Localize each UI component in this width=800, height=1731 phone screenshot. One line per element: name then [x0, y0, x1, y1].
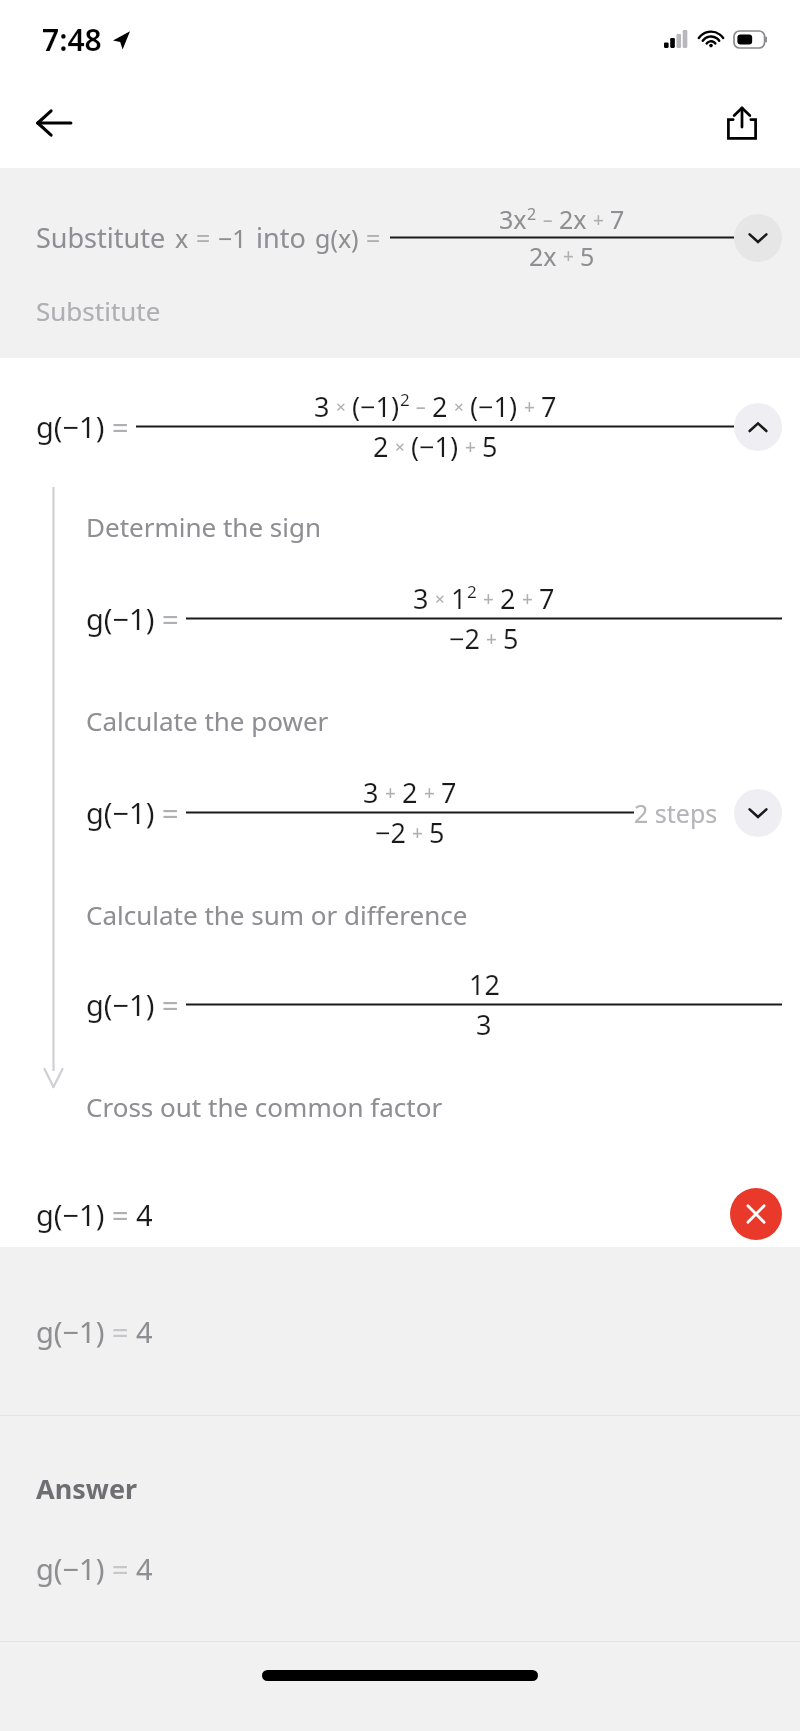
staticText: −2 — [375, 814, 406, 851]
staticText: 2x — [529, 239, 557, 273]
staticText: = — [162, 599, 179, 638]
staticText: 5 — [429, 814, 445, 851]
staticText: × — [336, 395, 346, 418]
staticText: = — [366, 221, 381, 255]
staticText: x — [175, 221, 189, 255]
staticText: 5 — [503, 620, 519, 657]
staticText: 5 — [580, 239, 595, 273]
staticText: Answer — [36, 1470, 138, 1507]
staticText: + — [522, 586, 533, 612]
button[interactable]: g(−1) — [0, 1247, 800, 1415]
staticText: + — [424, 780, 435, 806]
staticText: = — [162, 793, 179, 832]
staticText: 4 — [136, 1312, 153, 1351]
staticText: Cross out the common factor — [86, 1089, 443, 1124]
staticText: + — [563, 243, 574, 269]
staticText: g(−1) — [86, 793, 155, 832]
staticText: × — [395, 435, 405, 458]
staticText: 3 — [476, 1006, 492, 1043]
staticText: 7 — [610, 202, 625, 236]
staticText: Calculate the power — [86, 703, 329, 738]
staticText: = — [112, 1549, 129, 1588]
staticText: into — [256, 219, 306, 256]
staticText: + — [524, 394, 535, 420]
staticText: g(−1) — [36, 1312, 105, 1351]
staticText: 7:48 — [42, 19, 102, 60]
staticText: 2 — [500, 580, 516, 617]
staticText: Calculate the sum or difference — [86, 897, 468, 932]
staticText: (−1) — [411, 428, 459, 465]
staticText: Substitute — [36, 293, 161, 328]
staticText: = — [112, 1312, 129, 1351]
staticText: + — [593, 207, 604, 233]
button[interactable]: Back — [22, 91, 86, 155]
staticText: = — [162, 985, 179, 1024]
staticText: 2 steps — [634, 796, 718, 830]
button[interactable]: Share — [710, 91, 774, 155]
staticText: 3 — [363, 774, 379, 811]
staticText: 2 — [527, 203, 537, 225]
staticText: 5 — [482, 428, 498, 465]
staticText: 7 — [441, 774, 457, 811]
staticText: 3 — [413, 580, 429, 617]
button[interactable]: g(−1) — [36, 388, 782, 465]
staticText: × — [454, 395, 464, 418]
staticText: + — [412, 820, 423, 846]
staticText: 7 — [539, 580, 555, 617]
button[interactable]: g(−1) — [36, 1188, 782, 1240]
staticText: 2 — [373, 428, 389, 465]
staticText: + — [465, 434, 476, 460]
button[interactable]: Answer — [0, 1416, 800, 1641]
staticText: + — [486, 626, 497, 652]
button[interactable]: Close — [730, 1188, 782, 1240]
staticText: – — [543, 207, 553, 233]
staticText: 3x — [499, 202, 527, 236]
staticText: 12 — [469, 966, 500, 1003]
staticText: g(−1) — [86, 599, 155, 638]
staticText: 7 — [541, 388, 557, 425]
staticText: = — [112, 1195, 129, 1234]
staticText: – — [416, 394, 426, 420]
staticText: 1 — [451, 580, 467, 617]
staticText: + — [483, 586, 494, 612]
staticText: 2x — [559, 202, 587, 236]
staticText: g(−1) — [86, 985, 155, 1024]
button[interactable]: Substitute — [0, 168, 800, 358]
staticText: (−1) — [470, 388, 518, 425]
staticText: Determine the sign — [86, 509, 322, 544]
staticText: 4 — [136, 1549, 153, 1588]
staticText: 2 — [432, 388, 448, 425]
staticText: g(x) — [315, 221, 359, 255]
button[interactable]: 2 steps — [634, 789, 782, 837]
staticText: −2 — [449, 620, 480, 657]
staticText: Substitute — [36, 219, 166, 256]
staticText: g(−1) — [36, 1195, 105, 1234]
staticText: g(−1) — [36, 407, 105, 446]
staticText: g(−1) — [36, 1549, 105, 1588]
staticText: 4 — [136, 1195, 153, 1234]
button[interactable]: Show 2 steps — [734, 789, 782, 837]
staticText: (−1) — [352, 388, 400, 425]
staticText: 2 — [402, 774, 418, 811]
staticText: 3 — [314, 388, 330, 425]
staticText: −1 — [218, 221, 247, 255]
staticText: 2 — [400, 388, 410, 411]
button[interactable]: Expand step — [734, 214, 782, 262]
staticText: = — [112, 407, 129, 446]
staticText: = — [196, 221, 211, 255]
staticText: + — [385, 780, 396, 806]
staticText: × — [435, 587, 445, 610]
staticText: 2 — [467, 580, 477, 603]
button[interactable]: Collapse step — [734, 403, 782, 451]
